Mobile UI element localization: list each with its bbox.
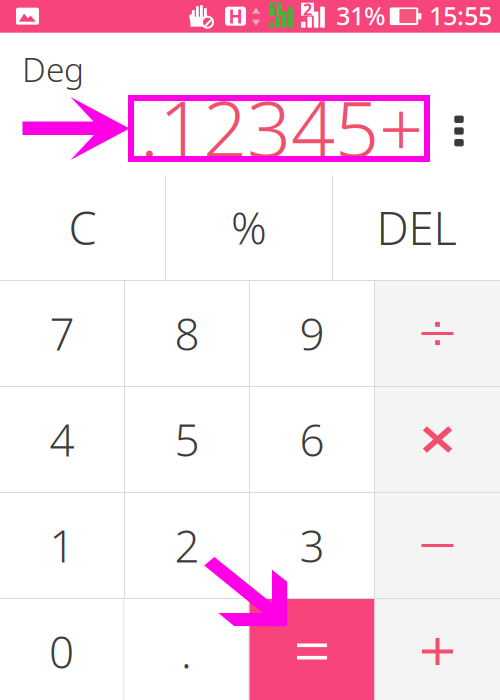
button[interactable]: 0	[0, 599, 123, 700]
staticText: 31%	[336, 0, 386, 32]
button[interactable]: .	[124, 599, 248, 700]
button[interactable]: 4	[0, 387, 124, 492]
staticText: 8	[174, 304, 199, 363]
staticText: 2	[174, 516, 199, 575]
button[interactable]: Multiply	[375, 387, 500, 492]
button[interactable]: 8	[125, 281, 249, 386]
staticText: %	[231, 198, 267, 257]
button[interactable]: 9	[250, 281, 374, 386]
staticText: 5	[174, 410, 199, 469]
staticText: 2	[303, 0, 312, 20]
button[interactable]: 2	[125, 493, 249, 598]
staticText: .	[181, 622, 192, 681]
button[interactable]: C	[0, 175, 165, 280]
staticText: 15:55	[429, 0, 492, 32]
button[interactable]: %	[166, 175, 332, 280]
staticText: H	[228, 4, 242, 29]
button[interactable]: 5	[125, 387, 249, 492]
button[interactable]: 7	[0, 281, 124, 386]
button[interactable]: 3	[250, 493, 374, 598]
button[interactable]: DEL	[333, 175, 500, 280]
button[interactable]: Minus	[375, 493, 500, 598]
staticText: 4	[49, 410, 74, 469]
staticText: .12345+	[140, 76, 423, 179]
button[interactable]: 6	[250, 387, 374, 492]
staticText: 9	[299, 304, 324, 363]
staticText: 1	[271, 0, 280, 20]
staticText: Deg	[22, 47, 84, 91]
button[interactable]: 1	[0, 493, 124, 598]
button[interactable]: Equals	[249, 599, 374, 700]
button[interactable]: More options	[437, 100, 481, 162]
staticText: 0	[49, 622, 74, 681]
staticText: 7	[49, 304, 74, 363]
staticText: C	[68, 197, 96, 258]
staticText: 3	[299, 516, 324, 575]
staticText: 6	[299, 410, 324, 469]
staticText: DEL	[376, 197, 456, 258]
button[interactable]: Divide	[375, 281, 500, 386]
button[interactable]: Plus	[374, 599, 500, 700]
staticText: 1	[49, 516, 74, 575]
